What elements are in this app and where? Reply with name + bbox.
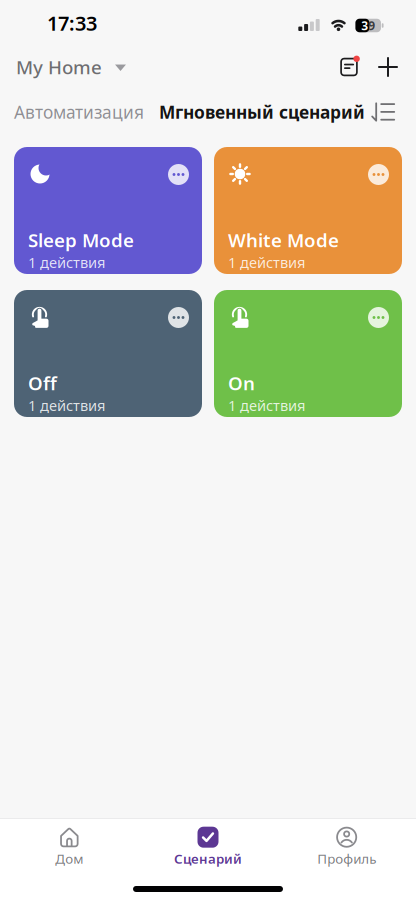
staticText: Мгновенный сценарий [159,100,365,123]
staticText: 1 действия [228,395,305,415]
staticText: Сценарий [174,850,242,867]
staticText: On [228,371,255,395]
staticText: 1 действия [28,252,105,272]
button[interactable]: On [214,290,402,417]
button[interactable]: My Home [16,55,126,79]
button[interactable]: Мгновенный сценарий [159,100,365,123]
staticText: Дом [55,850,83,867]
staticText: 3 [361,17,368,33]
staticText: Профиль [317,850,376,867]
button[interactable]: Сценарий [139,827,277,867]
staticText: 1 действия [28,395,105,415]
staticText: 1 действия [228,252,305,272]
staticText: White Mode [228,228,339,252]
staticText: 9 [368,17,375,33]
staticText: 17:33 [47,10,97,36]
button[interactable]: Автоматизация [14,100,144,123]
button[interactable]: More options [168,164,189,185]
button[interactable]: Off [14,290,202,417]
button[interactable]: More options [368,164,389,185]
button[interactable]: Add [379,58,397,76]
button[interactable]: More options [368,307,389,328]
staticText: My Home [16,55,102,79]
button[interactable]: Sleep Mode [14,147,202,274]
button[interactable]: Message Center [339,57,359,77]
button[interactable]: White Mode [214,147,402,274]
button[interactable]: Sort [371,102,395,121]
button[interactable]: Профиль [277,827,416,867]
staticText: Off [28,371,57,395]
button[interactable]: Дом [0,827,139,867]
staticText: Sleep Mode [28,228,134,252]
button[interactable]: More options [168,307,189,328]
staticText: Автоматизация [14,100,144,123]
